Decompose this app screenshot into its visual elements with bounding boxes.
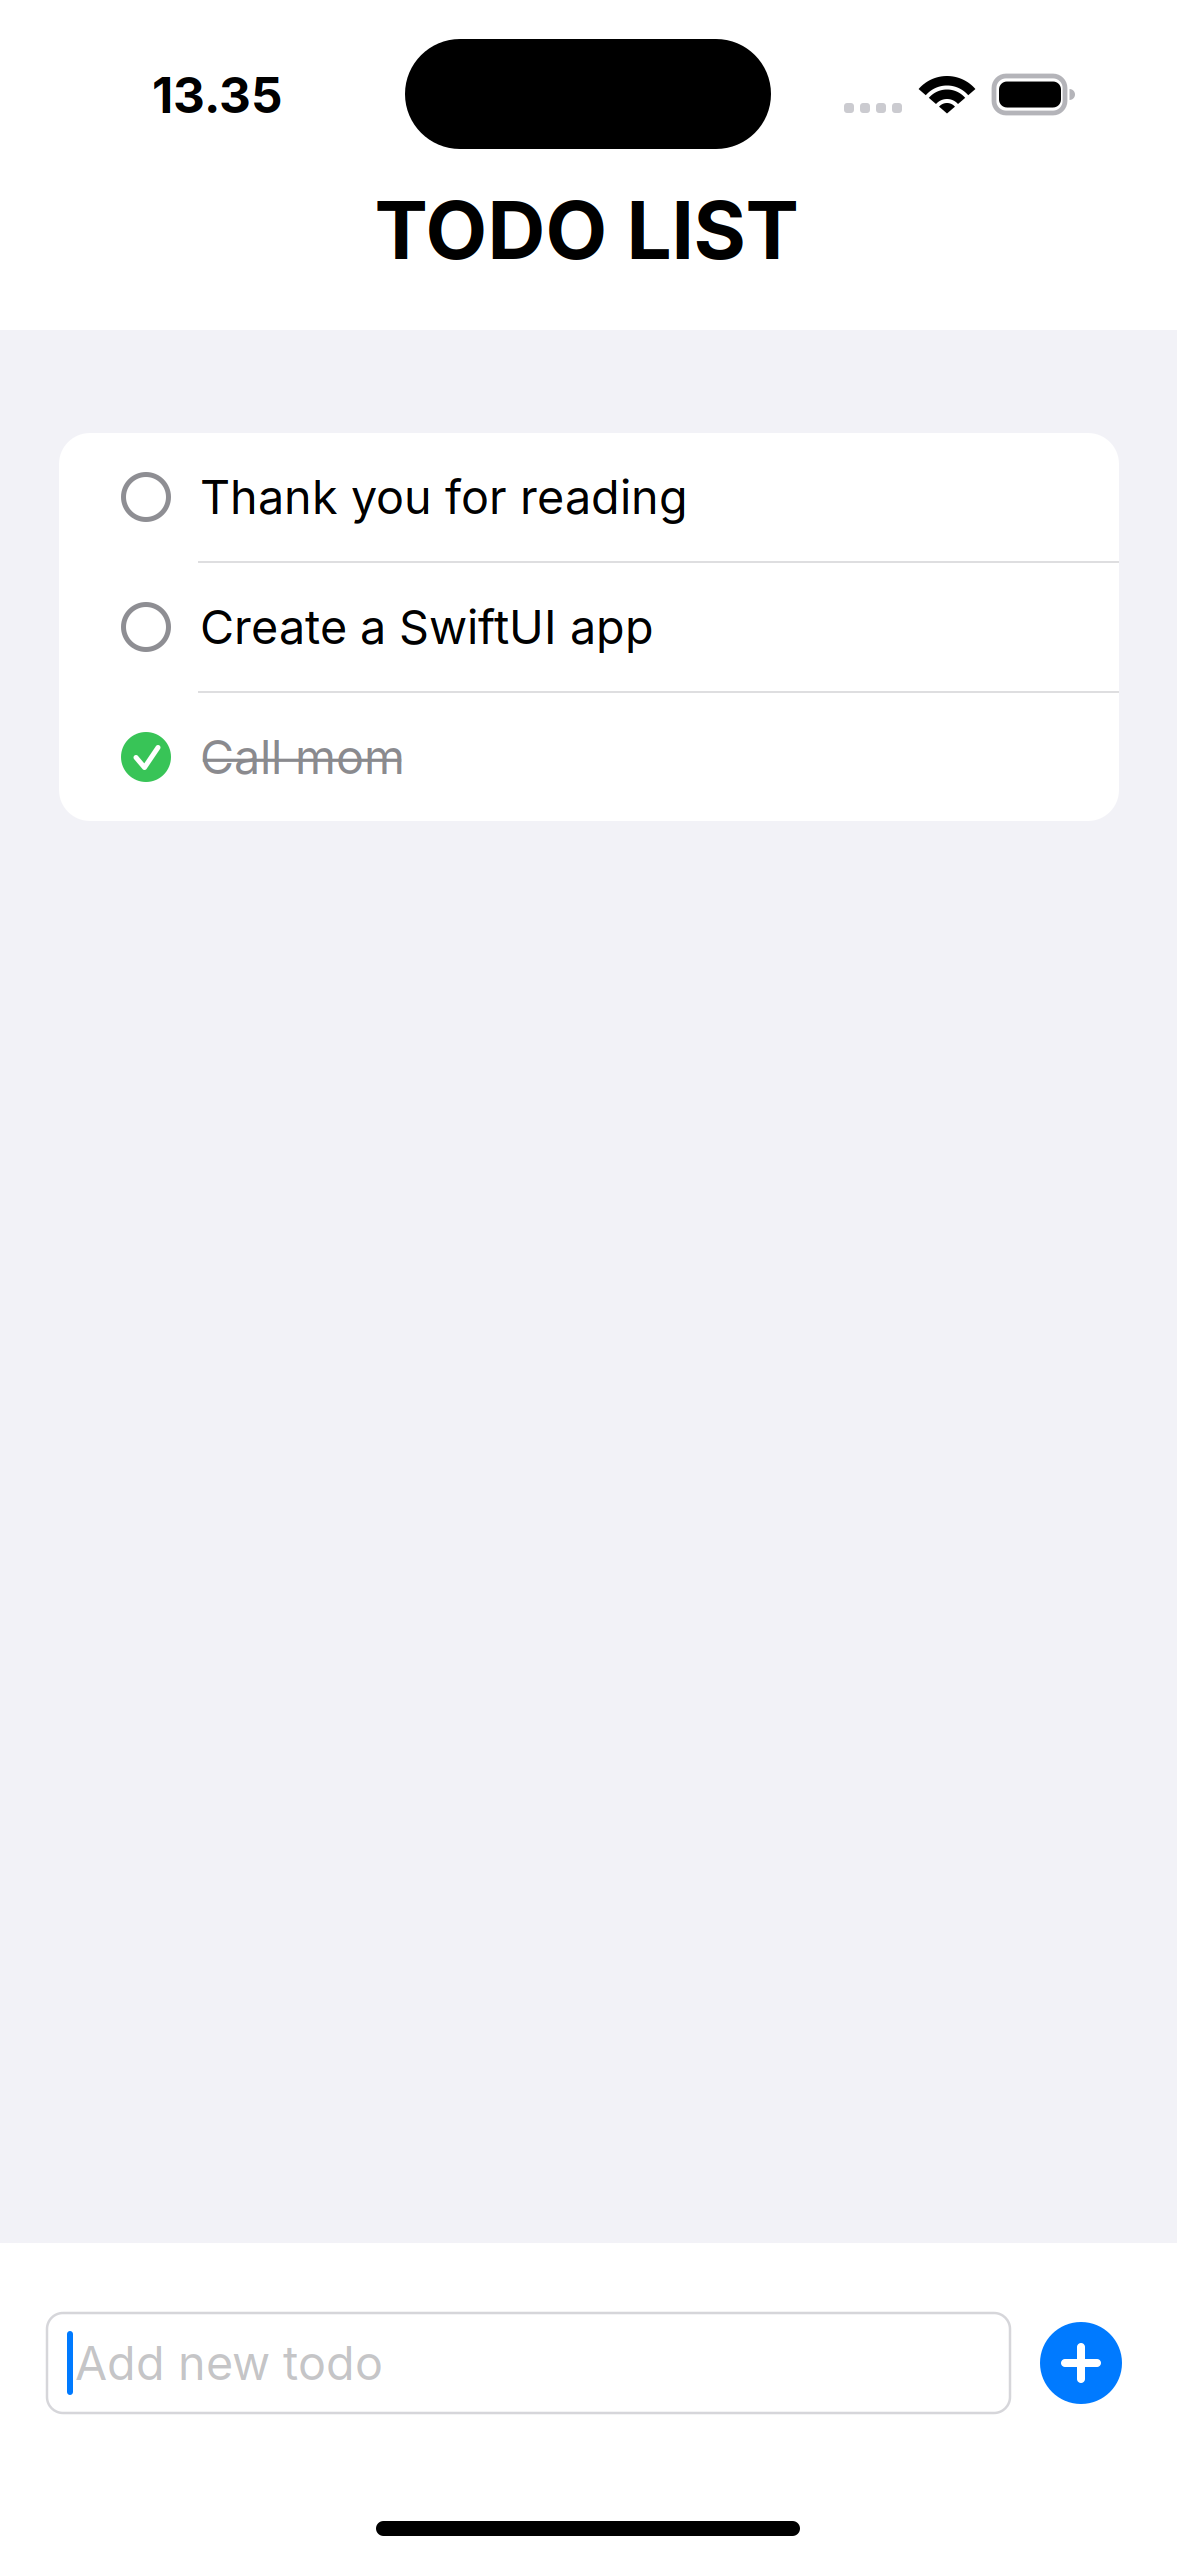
button[interactable]: Thank you for reading <box>59 433 1119 561</box>
button[interactable]: Add new todo <box>47 2313 1010 2413</box>
button[interactable]: Create a SwiftUI app <box>59 563 1119 691</box>
staticText: 13.35 <box>152 65 283 125</box>
staticText: Add new todo <box>75 2335 383 2391</box>
staticText: Thank you for reading <box>200 469 688 525</box>
staticText: Call mom <box>200 729 405 785</box>
button[interactable]: Call mom <box>59 693 1119 821</box>
button[interactable]: Add todo <box>1040 2322 1122 2404</box>
staticText: Create a SwiftUI app <box>200 599 654 655</box>
staticText: TODO LIST <box>374 182 798 278</box>
